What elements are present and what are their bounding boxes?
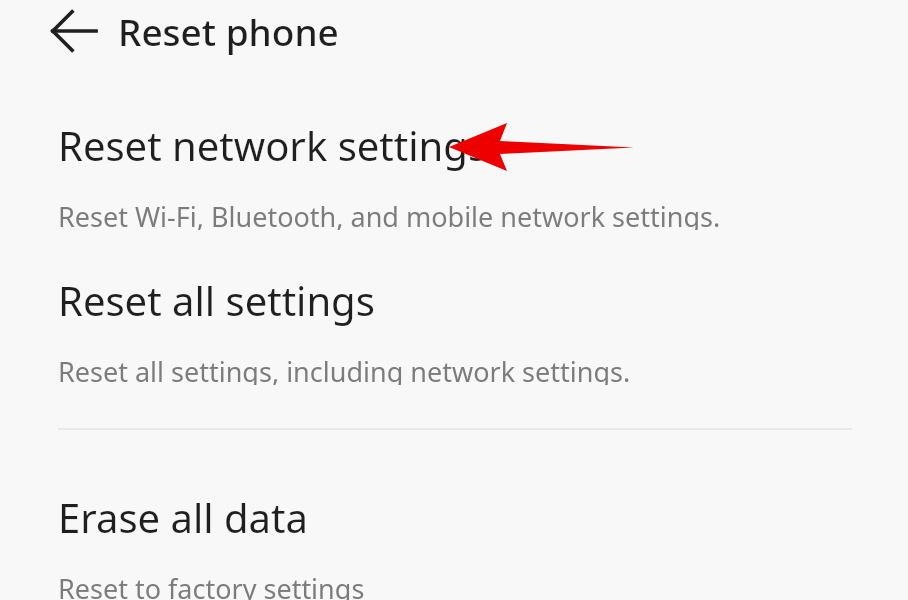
staticText: Reset all settings bbox=[58, 273, 375, 327]
staticText: Reset all settings, including network se… bbox=[58, 353, 631, 385]
button[interactable]: Reset network settings bbox=[0, 116, 908, 228]
staticText: Reset to factory settings bbox=[58, 570, 365, 600]
staticText: Reset network settings bbox=[58, 118, 488, 172]
staticText: Reset Wi-Fi, Bluetooth, and mobile netwo… bbox=[58, 198, 721, 230]
button[interactable]: Reset all settings bbox=[0, 271, 908, 383]
staticText: Erase all data bbox=[58, 490, 308, 544]
button[interactable]: Erase all data bbox=[0, 488, 908, 598]
button[interactable]: Back bbox=[36, 0, 112, 62]
staticText: Reset phone bbox=[118, 6, 339, 56]
